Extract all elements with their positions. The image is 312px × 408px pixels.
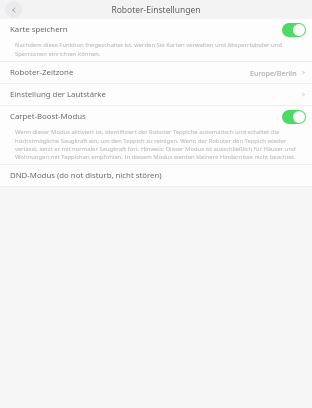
staticText: Carpet-Boost-Modus bbox=[10, 111, 86, 122]
staticText: Nachdem diese Funktion freigeschaltet is… bbox=[15, 41, 302, 57]
staticText: Einstellung der Lautstärke bbox=[10, 89, 106, 100]
button[interactable]: Back bbox=[5, 1, 22, 18]
button[interactable]: Karte speichern bbox=[0, 19, 312, 40]
button[interactable]: Carpet-Boost-Modus bbox=[0, 106, 312, 127]
staticText: Europe/Berlin bbox=[250, 68, 297, 78]
staticText: Karte speichern bbox=[10, 24, 68, 35]
button[interactable]: Toggle on bbox=[282, 110, 306, 124]
staticText: Wenn dieser Modus aktiviert ist, identif… bbox=[15, 128, 302, 160]
staticText: Roboter-Zeitzone bbox=[10, 67, 74, 78]
button[interactable]: Roboter-Zeitzone bbox=[0, 62, 312, 83]
staticText: Roboter-Einstellungen bbox=[111, 4, 201, 16]
button[interactable]: Einstellung der Lautstärke bbox=[0, 84, 312, 105]
button[interactable]: Toggle on bbox=[282, 23, 306, 37]
button[interactable]: DND-Modus (do not disturb, nicht stören) bbox=[0, 165, 312, 186]
staticText: DND-Modus (do not disturb, nicht stören) bbox=[10, 170, 162, 181]
